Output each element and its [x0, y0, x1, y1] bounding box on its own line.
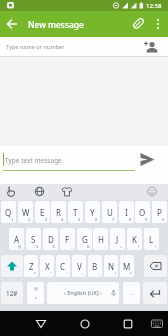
button[interactable]: Type text message	[5, 146, 115, 174]
button[interactable]: O	[135, 201, 150, 223]
button[interactable]: E	[35, 201, 50, 223]
button[interactable]	[150, 317, 164, 331]
button[interactable]: U	[102, 201, 117, 223]
button[interactable]: H	[93, 228, 108, 250]
staticText: !	[115, 271, 116, 276]
button[interactable]: 12#	[1, 282, 23, 304]
staticText: 2	[28, 217, 31, 222]
button[interactable]: K	[127, 228, 142, 250]
button[interactable]	[33, 316, 49, 332]
button[interactable]: Z	[24, 255, 38, 277]
button[interactable]: G	[77, 228, 92, 250]
button[interactable]: S	[26, 228, 41, 250]
button[interactable]: Y	[85, 201, 100, 223]
staticText: O	[139, 207, 146, 218]
staticText: .	[131, 288, 133, 298]
button[interactable]	[4, 16, 20, 32]
staticText: Type name or number	[6, 43, 65, 51]
button[interactable]	[146, 185, 158, 198]
button[interactable]	[143, 40, 159, 54]
staticText: U	[107, 207, 113, 218]
button[interactable]: I	[119, 201, 134, 223]
button[interactable]	[120, 316, 136, 332]
staticText: '	[67, 271, 68, 276]
staticText: B	[92, 261, 98, 272]
button[interactable]: M	[120, 255, 134, 277]
staticText: G	[82, 234, 88, 245]
staticText: ?	[130, 271, 132, 276]
staticText: (	[138, 244, 140, 249]
staticText: C	[60, 261, 66, 272]
button[interactable]	[144, 255, 167, 277]
staticText: #	[36, 244, 39, 249]
button[interactable]: .	[123, 282, 140, 304]
staticText: 1	[11, 217, 14, 222]
button[interactable]: F	[60, 228, 75, 250]
button[interactable]	[61, 185, 73, 198]
button[interactable]	[5, 185, 17, 198]
button[interactable]: X	[40, 255, 54, 277]
staticText: -	[104, 244, 106, 249]
staticText: _	[71, 244, 73, 249]
staticText: D	[48, 234, 54, 245]
button[interactable]	[0, 37, 168, 56]
staticText: V	[77, 261, 82, 272]
staticText: Z	[29, 261, 34, 272]
button[interactable]: W	[18, 201, 33, 223]
staticText: N	[108, 261, 115, 272]
staticText: H	[98, 234, 104, 245]
button[interactable]: R	[51, 201, 66, 223]
staticText: "	[50, 271, 52, 276]
staticText: )	[155, 244, 157, 249]
staticText: 6	[95, 217, 98, 222]
button[interactable]	[139, 151, 156, 168]
button[interactable]: Q	[1, 201, 16, 223]
button[interactable]	[130, 15, 147, 32]
staticText: A	[14, 234, 20, 245]
staticText: ,	[35, 291, 37, 300]
button[interactable]	[143, 282, 167, 304]
staticText: P	[157, 207, 162, 218]
button[interactable]: D	[43, 228, 58, 250]
staticText: M	[123, 261, 131, 272]
button[interactable]	[34, 185, 45, 198]
button[interactable]: A	[9, 228, 24, 250]
staticText: I	[125, 207, 128, 218]
staticText: :	[83, 271, 84, 276]
button[interactable]: B	[88, 255, 102, 277]
button[interactable]	[77, 316, 93, 332]
button[interactable]: T	[68, 201, 83, 223]
staticText: Y	[90, 207, 95, 218]
staticText: L	[149, 234, 154, 245]
staticText: 12:58	[146, 2, 162, 10]
button[interactable]: @	[27, 282, 44, 304]
button[interactable]	[152, 16, 164, 32]
button[interactable]: C	[56, 255, 70, 277]
button[interactable]: ‹ English (UK) ›	[47, 282, 119, 304]
staticText: ;	[99, 271, 100, 276]
staticText: Q	[5, 207, 12, 218]
staticText: 9	[145, 217, 148, 222]
staticText: +	[120, 244, 123, 249]
staticText: W	[22, 207, 30, 218]
staticText: S	[31, 234, 36, 245]
button[interactable]: J	[110, 228, 125, 250]
staticText: 7	[112, 217, 115, 222]
staticText: 8	[129, 217, 132, 222]
button[interactable]: L	[144, 228, 159, 250]
button[interactable]: N	[104, 255, 118, 277]
staticText: 3	[45, 217, 48, 222]
staticText: E	[40, 207, 45, 218]
staticText: J	[116, 234, 119, 245]
staticText: Type text message	[5, 156, 62, 165]
staticText: 0	[162, 217, 165, 222]
staticText: 12#	[6, 289, 18, 298]
button[interactable]	[1, 255, 23, 277]
button[interactable]: V	[72, 255, 86, 277]
staticText: New message	[28, 19, 84, 30]
button[interactable]: P	[152, 201, 167, 223]
staticText: R	[56, 207, 61, 218]
staticText: 4	[61, 217, 64, 222]
staticText: T	[73, 207, 78, 218]
staticText: X	[45, 261, 50, 272]
